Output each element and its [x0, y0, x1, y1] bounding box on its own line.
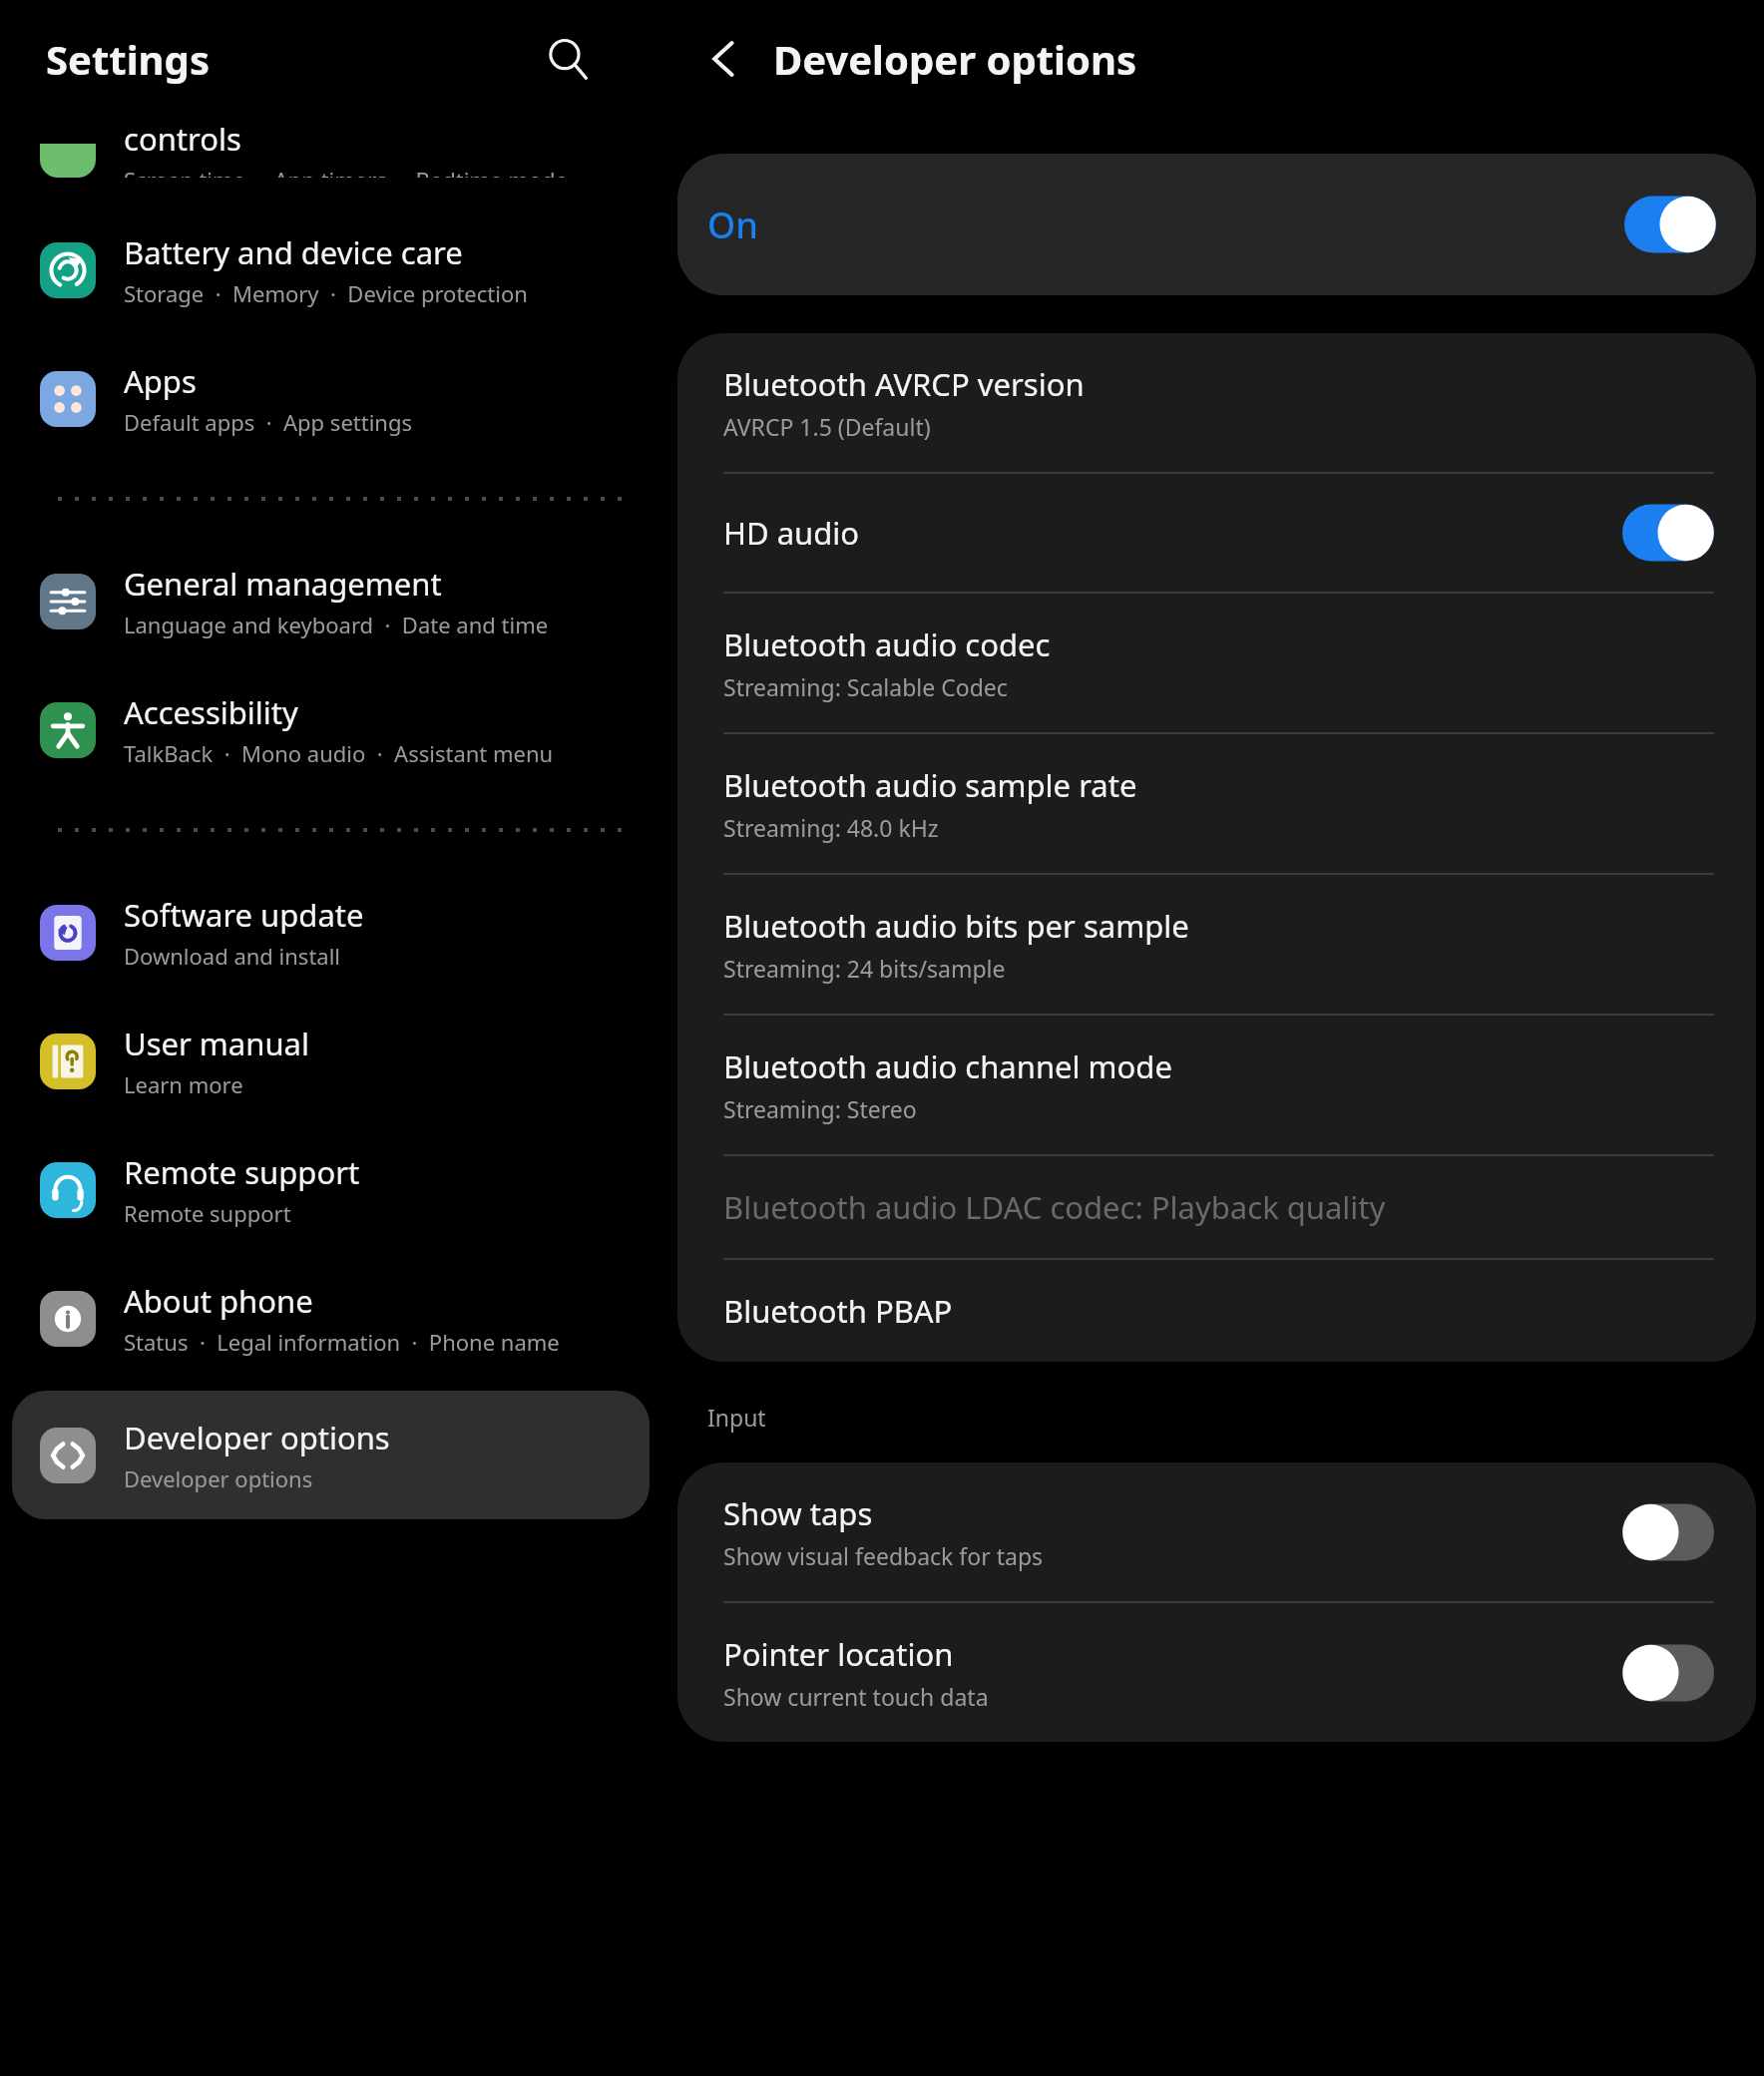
- button[interactable]: Bluetooth audio codec: [677, 594, 1756, 732]
- staticText: Storage · Memory · Device protection: [124, 278, 528, 308]
- button[interactable]: Bluetooth audio LDAC codec: Playback qua…: [677, 1156, 1756, 1258]
- staticText: controls: [124, 118, 241, 160]
- staticText: Developer options: [773, 32, 1137, 86]
- staticText: Bluetooth audio codec: [723, 623, 1051, 665]
- button[interactable]: Apps: [0, 334, 661, 463]
- button[interactable]: User manual: [0, 997, 661, 1125]
- staticText: Software update: [124, 894, 364, 936]
- staticText: Streaming: 24 bits/sample: [723, 953, 1006, 984]
- staticText: General management: [124, 563, 442, 605]
- button[interactable]: About phone: [0, 1254, 661, 1383]
- button[interactable]: HD audio: [677, 474, 1756, 592]
- staticText: Apps: [124, 360, 197, 402]
- staticText: Screen time · App timers · Bedtime mode: [124, 165, 568, 178]
- staticText: Bluetooth AVRCP version: [723, 363, 1085, 405]
- button[interactable]: General management: [0, 537, 661, 665]
- staticText: TalkBack · Mono audio · Assistant menu: [124, 738, 554, 768]
- staticText: Input: [707, 1402, 766, 1433]
- button[interactable]: Pointer location: [1622, 1644, 1714, 1702]
- staticText: Status · Legal information · Phone name: [124, 1327, 560, 1357]
- staticText: Battery and device care: [124, 231, 463, 273]
- button[interactable]: Bluetooth audio sample rate: [677, 734, 1756, 873]
- staticText: Show visual feedback for taps: [723, 1540, 1044, 1571]
- staticText: HD audio: [723, 512, 860, 554]
- staticText: Streaming: 48.0 kHz: [723, 812, 939, 843]
- button[interactable]: Bluetooth PBAP: [677, 1260, 1756, 1362]
- button[interactable]: Search: [536, 27, 600, 91]
- staticText: Language and keyboard · Date and time: [124, 610, 549, 639]
- button[interactable]: Show taps: [1622, 1503, 1714, 1561]
- staticText: Bluetooth audio bits per sample: [723, 905, 1189, 947]
- button[interactable]: Bluetooth audio bits per sample: [677, 875, 1756, 1014]
- staticText: Bluetooth audio channel mode: [723, 1045, 1172, 1087]
- staticText: Show taps: [723, 1492, 873, 1534]
- staticText: Bluetooth PBAP: [723, 1290, 953, 1332]
- button[interactable]: Developer options: [12, 1391, 650, 1519]
- button[interactable]: Bluetooth AVRCP version: [677, 333, 1756, 472]
- button[interactable]: Bluetooth audio channel mode: [677, 1016, 1756, 1154]
- staticText: Developer options: [124, 1417, 390, 1458]
- staticText: User manual: [124, 1023, 309, 1064]
- staticText: Accessibility: [124, 691, 298, 733]
- button[interactable]: Show taps: [677, 1462, 1756, 1601]
- staticText: Show current touch data: [723, 1681, 989, 1712]
- staticText: Bluetooth audio LDAC codec: Playback qua…: [723, 1186, 1386, 1228]
- staticText: Developer options: [124, 1463, 313, 1493]
- staticText: Download and install: [124, 941, 341, 971]
- staticText: Bluetooth audio sample rate: [723, 764, 1137, 806]
- button[interactable]: Remote support: [0, 1125, 661, 1254]
- button[interactable]: On: [677, 154, 1756, 295]
- staticText: Default apps · App settings: [124, 407, 413, 437]
- staticText: Streaming: Stereo: [723, 1093, 917, 1124]
- staticText: About phone: [124, 1280, 313, 1322]
- button[interactable]: Accessibility: [0, 665, 661, 794]
- button[interactable]: Pointer location: [677, 1603, 1756, 1742]
- staticText: Remote support: [124, 1151, 360, 1193]
- button[interactable]: Software update: [0, 868, 661, 997]
- staticText: Pointer location: [723, 1633, 954, 1675]
- staticText: On: [707, 201, 1624, 249]
- staticText: AVRCP 1.5 (Default): [723, 411, 931, 442]
- staticText: Settings: [46, 32, 210, 86]
- button[interactable]: Battery and device care: [0, 206, 661, 334]
- button[interactable]: HD audio: [1622, 504, 1714, 562]
- button[interactable]: Developer options: [1624, 196, 1716, 253]
- staticText: Remote support: [124, 1198, 291, 1228]
- staticText: Learn more: [124, 1069, 243, 1099]
- staticText: Streaming: Scalable Codec: [723, 671, 1008, 702]
- button[interactable]: Back: [693, 28, 755, 90]
